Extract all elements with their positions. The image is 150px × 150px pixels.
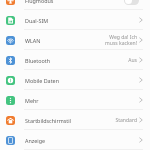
staticText: Mehr bbox=[25, 97, 39, 104]
staticText: Dual-SIM bbox=[25, 17, 49, 24]
button[interactable]: Dual-SIM bbox=[0, 10, 150, 30]
other: Open bbox=[139, 97, 143, 103]
staticText: Flugmodus bbox=[25, 0, 54, 4]
other: Open bbox=[139, 77, 143, 83]
button[interactable]: Flugmodus bbox=[0, 0, 150, 10]
staticText: Aus bbox=[128, 57, 137, 64]
staticText: WLAN bbox=[25, 37, 41, 44]
button[interactable]: Bluetooth bbox=[0, 50, 150, 70]
button[interactable]: Anzeige bbox=[0, 130, 150, 150]
staticText: Bluetooth bbox=[25, 57, 51, 64]
button[interactable]: Startbildschirmstil bbox=[0, 110, 150, 130]
staticText: Weg da! Ich muss kacken! bbox=[105, 34, 137, 47]
button[interactable]: Flugmodus toggle bbox=[124, 0, 139, 5]
staticText: Mobile Daten bbox=[25, 77, 59, 84]
staticText: Startbildschirmstil bbox=[25, 117, 71, 124]
staticText: Anzeige bbox=[25, 137, 46, 144]
other: Open bbox=[139, 137, 143, 143]
button[interactable]: WLAN bbox=[0, 30, 150, 50]
other: Open bbox=[139, 37, 143, 43]
other: Open bbox=[139, 57, 143, 63]
other: Open bbox=[139, 117, 143, 123]
other: Open bbox=[139, 17, 143, 23]
button[interactable]: Mehr bbox=[0, 90, 150, 110]
staticText: Standard bbox=[115, 117, 137, 124]
button[interactable]: Mobile Daten bbox=[0, 70, 150, 90]
